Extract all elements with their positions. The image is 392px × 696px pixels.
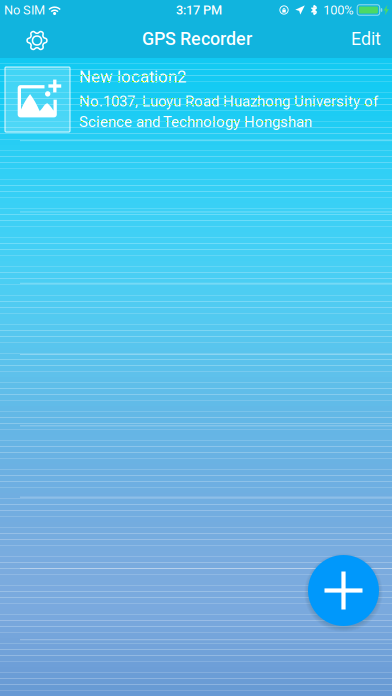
staticText: 3:17 PM bbox=[176, 2, 222, 17]
button[interactable]: New location2 bbox=[0, 58, 392, 140]
staticText: New location2 bbox=[79, 67, 186, 87]
staticText: No.1037, Luoyu Road Huazhong University … bbox=[79, 93, 378, 131]
staticText: GPS Recorder bbox=[142, 28, 252, 49]
button[interactable]: Settings bbox=[14, 20, 60, 58]
button[interactable]: Add location bbox=[303, 550, 384, 631]
staticText: No SIM bbox=[4, 2, 45, 17]
staticText: 100% bbox=[323, 2, 353, 17]
staticText: Edit bbox=[351, 28, 381, 49]
button[interactable]: Edit bbox=[331, 20, 381, 58]
